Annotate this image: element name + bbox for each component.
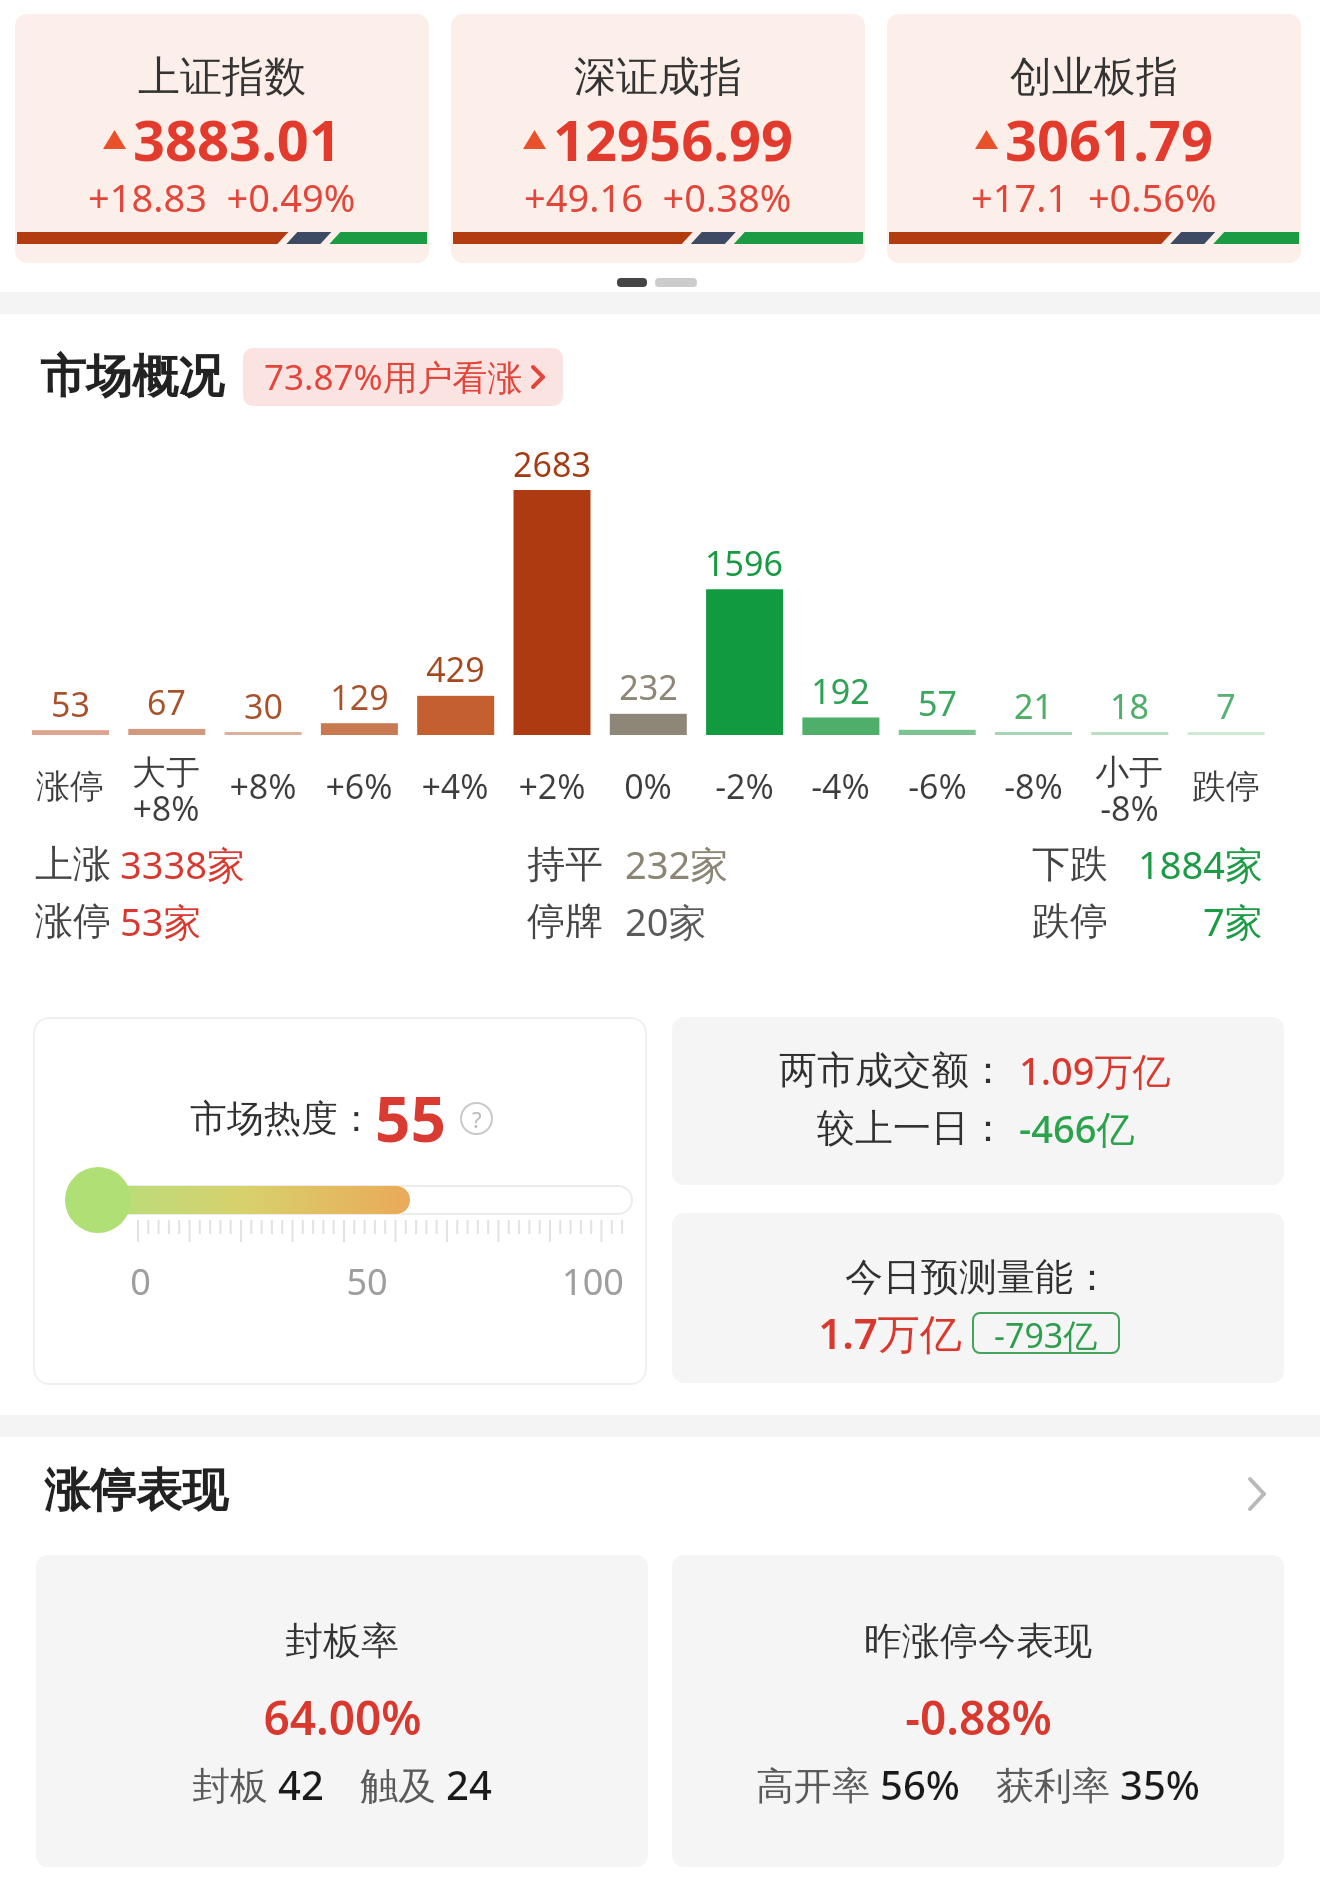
staticText: 3061.79	[1005, 101, 1213, 177]
staticText: 市场热度：	[190, 1095, 375, 1142]
staticText: -8%	[1100, 785, 1159, 831]
staticText: 深证成指	[574, 51, 742, 104]
staticText: 市场概况	[40, 348, 224, 406]
staticText: 55	[375, 1076, 446, 1160]
staticText: +18.83 +0.49%	[88, 171, 356, 223]
staticText: -0.88%	[905, 1686, 1052, 1749]
staticText: 2683	[513, 441, 591, 487]
staticText: 持平	[527, 840, 603, 888]
button[interactable]: 深证成指	[451, 14, 865, 263]
staticText: -6%	[908, 763, 967, 809]
staticText: 67	[147, 679, 186, 725]
staticText: 涨停	[35, 897, 111, 945]
staticText: +8%	[229, 763, 297, 809]
staticText: 两市成交额：	[779, 1046, 1007, 1094]
staticText: 3883.01	[133, 101, 341, 177]
staticText: 今日预测量能：	[845, 1253, 1111, 1301]
staticText: +4%	[421, 763, 489, 809]
staticText: 21	[1014, 683, 1053, 729]
staticText: 较上一日：	[817, 1104, 1007, 1152]
staticText: 1.7万亿	[818, 1304, 962, 1361]
staticText: 封板	[192, 1758, 278, 1810]
button[interactable]: 上证指数	[15, 14, 429, 263]
staticText: 昨涨停今表现	[864, 1617, 1092, 1665]
staticText: 57	[918, 680, 957, 726]
staticText: 0	[130, 1257, 151, 1306]
staticText: 429	[426, 646, 485, 692]
staticText: 30	[244, 683, 283, 729]
staticText: ?	[472, 1104, 482, 1134]
staticText: 大于	[132, 751, 200, 794]
staticText: 跌停	[1192, 765, 1260, 808]
button[interactable]	[36, 1555, 648, 1867]
staticText: -8%	[1004, 763, 1063, 809]
staticText: +2%	[518, 763, 586, 809]
button[interactable]	[672, 1555, 1284, 1867]
staticText: 3338家	[120, 838, 245, 890]
staticText: 42	[278, 1757, 324, 1811]
staticText: +49.16 +0.38%	[524, 171, 792, 223]
staticText: 跌停	[1032, 897, 1108, 945]
staticText: 停牌	[527, 897, 603, 945]
staticText: 1884家	[1138, 838, 1263, 890]
staticText: 100	[562, 1257, 624, 1306]
staticText: 56%	[880, 1757, 960, 1811]
button[interactable]: 市场热度：	[33, 1017, 647, 1385]
staticText: 获利率	[996, 1758, 1120, 1810]
staticText: 下跌	[1032, 840, 1108, 888]
staticText: 创业板指	[1010, 51, 1178, 104]
staticText: -4%	[811, 763, 870, 809]
staticText: 53家	[120, 895, 202, 947]
staticText: 53	[51, 681, 90, 727]
button[interactable]: 创业板指	[887, 14, 1301, 263]
staticText: 232	[619, 664, 678, 710]
staticText: 上证指数	[138, 51, 306, 104]
staticText: 64.00%	[263, 1686, 422, 1749]
staticText: 涨停	[36, 765, 104, 808]
staticText: -466亿	[1019, 1102, 1135, 1154]
staticText: 73.87%用户看涨	[264, 353, 523, 401]
staticText: 12956.99	[553, 101, 793, 177]
button[interactable]	[672, 1017, 1284, 1185]
button[interactable]: 73.87%用户看涨	[243, 348, 563, 406]
staticText: +8%	[132, 785, 200, 831]
staticText: 上涨	[35, 840, 111, 888]
staticText: +6%	[325, 763, 393, 809]
staticText: 129	[330, 674, 389, 720]
button[interactable]	[672, 1213, 1284, 1383]
staticText: +17.1 +0.56%	[971, 171, 1217, 223]
staticText: 18	[1110, 683, 1149, 729]
staticText: -793亿	[994, 1312, 1098, 1354]
staticText: 50	[346, 1257, 388, 1306]
staticText: 1596	[705, 540, 783, 586]
staticText: 20家	[625, 895, 707, 947]
staticText: -2%	[715, 763, 774, 809]
staticText: 232家	[625, 838, 729, 890]
staticText: 小于	[1095, 751, 1163, 794]
staticText: 35%	[1120, 1757, 1200, 1811]
staticText: 封板率	[285, 1617, 399, 1665]
staticText: 涨停表现	[44, 1462, 228, 1520]
staticText: 7	[1216, 683, 1236, 729]
staticText: 7家	[1203, 895, 1263, 947]
button[interactable]	[1246, 1477, 1268, 1511]
staticText: 192	[811, 668, 870, 714]
staticText: 高开率	[756, 1758, 880, 1810]
staticText: 24	[446, 1757, 492, 1811]
staticText: 触及	[360, 1758, 446, 1810]
staticText: 1.09万亿	[1019, 1044, 1171, 1096]
staticText: 0%	[624, 763, 672, 809]
